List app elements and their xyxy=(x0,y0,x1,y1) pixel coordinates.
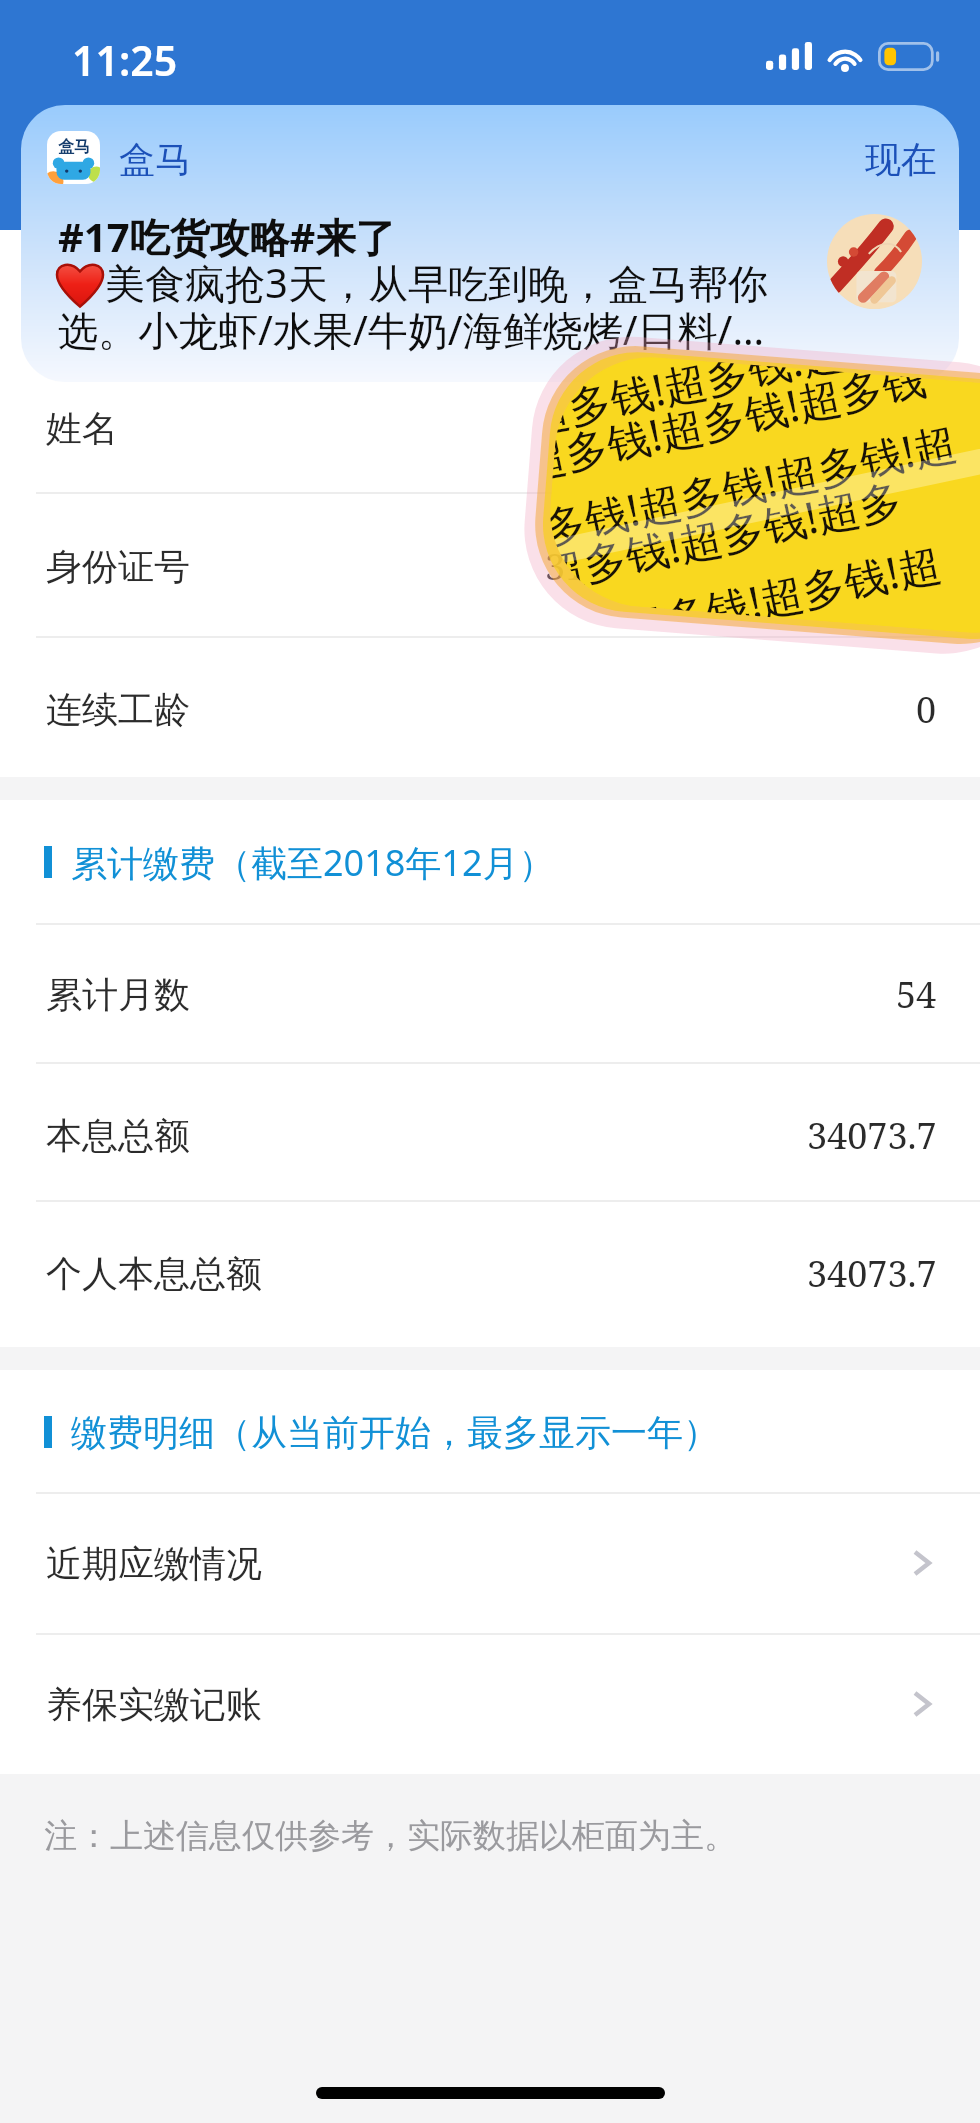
button[interactable]: 养保实缴记账 xyxy=(0,1669,980,1739)
button[interactable]: 本息总额 xyxy=(0,1100,980,1170)
staticText: 54 xyxy=(896,970,937,1019)
staticText: 钱!超多钱!超多钱!超多钱 xyxy=(550,350,932,536)
staticText: 超多钱!超多钱!超多钱!超 xyxy=(543,503,950,631)
button[interactable]: 姓名 xyxy=(0,393,980,463)
staticText: 超多钱!超多钱!超多钱!超 xyxy=(545,381,966,600)
staticText: 姓名 xyxy=(46,406,118,451)
staticText: 3102 XXXXXX4412 xyxy=(545,542,915,591)
button[interactable]: 累计月数 xyxy=(0,959,980,1029)
staticText: 本息总额 xyxy=(46,1113,190,1158)
staticText: 身份证号 xyxy=(46,544,190,589)
staticText: 近期应缴情况 xyxy=(46,1541,262,1586)
staticText: 累计月数 xyxy=(46,972,190,1017)
staticText: 缴费明细（从当前开始，最多显示一年） xyxy=(71,1410,719,1455)
staticText: 累计缴费（截至2018年12月） xyxy=(71,838,555,887)
staticText: 美食疯抢3天，从早吃到晚，盒马帮你 xyxy=(105,255,768,310)
staticText: 养保实缴记账 xyxy=(46,1682,262,1727)
staticText: 11:25 xyxy=(72,32,178,88)
staticText: 现在 xyxy=(865,137,937,182)
staticText: 盒马 xyxy=(58,137,90,157)
button[interactable]: 连续工龄 xyxy=(0,674,980,744)
staticText: 多钱!超多钱!超多钱!超多 xyxy=(543,442,911,627)
button[interactable]: 近期应缴情况 xyxy=(0,1528,980,1598)
staticText: 个人本息总额 xyxy=(46,1251,262,1296)
other: 查看详情 xyxy=(913,1550,931,1576)
staticText: 0 xyxy=(916,685,937,734)
button[interactable]: 个人本息总额 xyxy=(0,1238,980,1308)
other: 查看详情 xyxy=(913,1691,931,1717)
button[interactable]: 盒马 xyxy=(21,105,959,382)
staticText: 连续工龄 xyxy=(46,687,190,732)
staticText: 34073.7 xyxy=(807,1249,937,1298)
staticText: 选。小龙虾/水果/牛奶/海鲜烧烤/日料/… xyxy=(58,302,765,357)
staticText: 注：上述信息仅供参考，实际数据以柜面为主。 xyxy=(44,1815,737,1857)
staticText: 超多钱!超多钱!超多钱!超 xyxy=(555,350,980,480)
staticText: 盒马 xyxy=(119,137,191,182)
staticText: #17吃货攻略#来了 xyxy=(58,209,396,264)
staticText: 34073.7 xyxy=(807,1111,937,1160)
button[interactable]: 身份证号 xyxy=(0,531,980,601)
